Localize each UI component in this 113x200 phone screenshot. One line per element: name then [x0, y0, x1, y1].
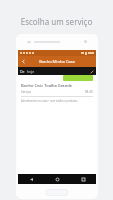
staticText: Escolha um serviço [0, 16, 113, 27]
button[interactable]: De [18, 67, 96, 75]
staticText: Banho Minha Casa [39, 59, 75, 64]
staticText: Atendimento em casa • com toalha e produ… [21, 99, 78, 103]
staticText: R$ 40 [85, 90, 93, 94]
button[interactable]: Back [18, 56, 29, 67]
button[interactable] [63, 75, 93, 81]
button[interactable]: Back [18, 174, 44, 184]
staticText: Serviço [21, 90, 32, 94]
staticText: hoje [27, 69, 35, 74]
staticText: Banho Civic Toalha Grande [21, 83, 72, 88]
button[interactable]: Recent apps [70, 174, 96, 184]
button[interactable]: Banho Civic Toalha Grande [18, 82, 96, 104]
staticText: De [20, 69, 25, 74]
button[interactable]: Home [44, 174, 70, 184]
